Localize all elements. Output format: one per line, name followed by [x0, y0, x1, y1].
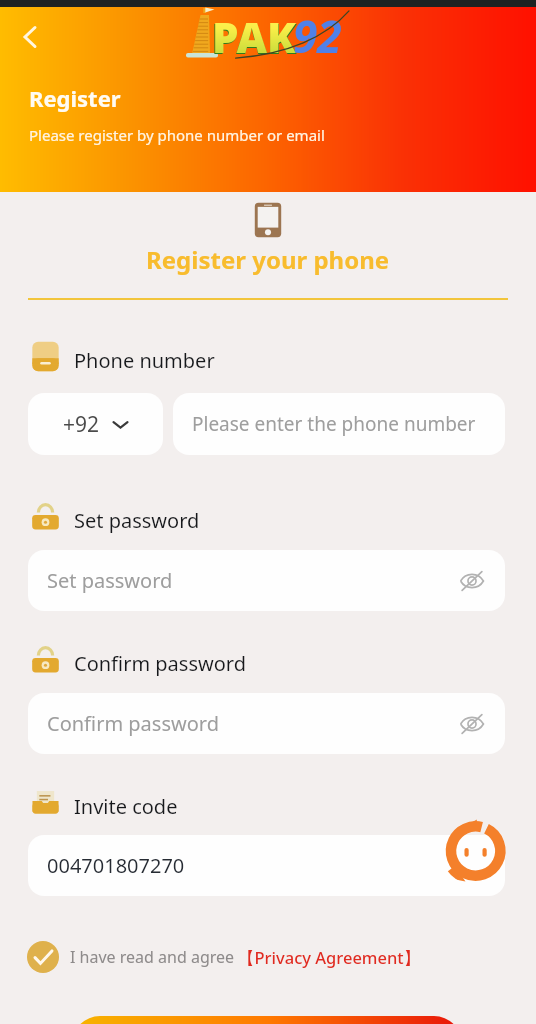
- staticText: Invite code: [74, 793, 178, 820]
- staticText: Set password: [74, 507, 200, 534]
- staticText: PAK: [212, 8, 296, 65]
- staticText: Please enter the phone number: [192, 411, 476, 437]
- staticText: Please register by phone number or email: [29, 125, 325, 145]
- staticText: Confirm password: [47, 710, 219, 737]
- button[interactable]: Customer service: [441, 817, 509, 885]
- staticText: Confirm password: [74, 650, 246, 677]
- button[interactable]: Please enter the phone number: [173, 393, 505, 455]
- staticText: +92: [63, 410, 100, 439]
- staticText: Register your phone: [146, 243, 390, 276]
- staticText: Register: [29, 83, 121, 113]
- staticText: 92: [293, 6, 342, 66]
- staticText: 004701807270: [47, 852, 185, 879]
- button[interactable]: Back: [8, 15, 52, 59]
- button[interactable]: 004701807270: [28, 835, 505, 896]
- staticText: Phone number: [74, 347, 215, 374]
- button[interactable]: Set password: [28, 550, 505, 611]
- staticText: PAK: [211, 8, 297, 67]
- button[interactable]: Register: [72, 1016, 462, 1024]
- button[interactable]: Agree to privacy agreement: [27, 941, 59, 973]
- button[interactable]: +92: [28, 393, 163, 455]
- button[interactable]: Show password: [459, 568, 485, 594]
- button[interactable]: Show password: [459, 711, 485, 737]
- staticText: Set password: [47, 567, 173, 594]
- button[interactable]: Confirm password: [28, 693, 505, 754]
- staticText: I have read and agree: [70, 946, 235, 968]
- button[interactable]: 【Privacy Agreement】: [238, 946, 421, 969]
